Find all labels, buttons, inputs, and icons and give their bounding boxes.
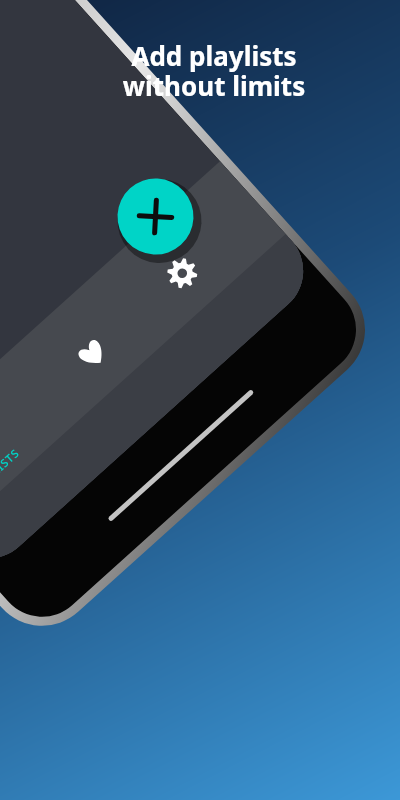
button[interactable]: Playlists [96,712,164,776]
button[interactable]: Close [291,485,346,540]
